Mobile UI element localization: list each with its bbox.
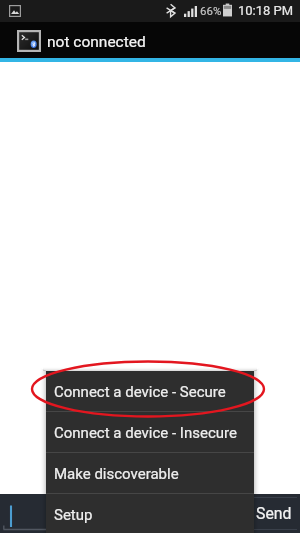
staticText: not connected	[47, 33, 146, 51]
staticText: 66%	[200, 4, 222, 17]
button[interactable]: Send	[254, 494, 300, 533]
staticText: Make discoverable	[54, 465, 179, 483]
button[interactable]: Connect a device - Insecure	[46, 412, 254, 452]
button[interactable]: Connect a device - Secure	[46, 371, 254, 411]
staticText: Connect a device - Insecure	[54, 424, 237, 442]
staticText: 10:18 PM	[238, 3, 294, 18]
staticText: Send	[256, 504, 292, 523]
button[interactable]: Message input	[0, 494, 254, 533]
staticText: Setup	[54, 506, 93, 524]
button[interactable]: Setup	[46, 494, 254, 533]
staticText: Connect a device - Secure	[54, 383, 226, 401]
button[interactable]: Make discoverable	[46, 453, 254, 493]
